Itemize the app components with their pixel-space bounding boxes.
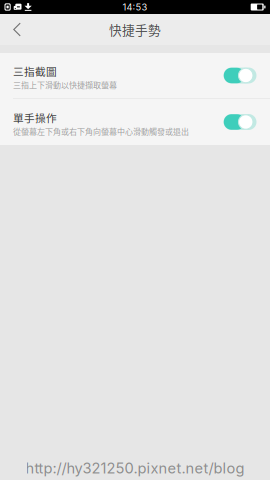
- button[interactable]: 單手操作: [0, 99, 270, 145]
- staticText: 三指截圖: [13, 63, 57, 79]
- button[interactable]: Back: [0, 14, 34, 45]
- staticText: http://hy321250.pixnet.net/blog: [25, 459, 244, 477]
- staticText: 從螢幕左下角或右下角向螢幕中心滑動觸發或退出: [13, 125, 189, 137]
- staticText: 快捷手勢: [109, 20, 161, 39]
- staticText: 單手操作: [13, 110, 57, 125]
- staticText: 14:53: [122, 1, 147, 13]
- staticText: 三指上下滑動以快捷擷取螢幕: [13, 79, 117, 90]
- button[interactable]: 三指截圖: [0, 53, 270, 98]
